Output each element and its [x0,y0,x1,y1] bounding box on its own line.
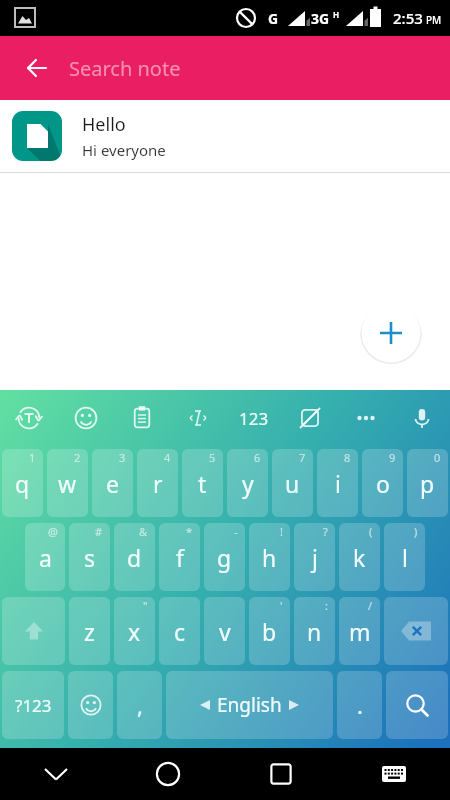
staticText: G [268,9,279,28]
button[interactable]: h [249,523,290,591]
button[interactable]: Hello [0,100,450,172]
staticText: 1 [29,450,36,465]
staticText: ?123 [15,694,52,717]
staticText: q [15,468,30,499]
staticText: - [234,524,238,539]
staticText: c [174,616,186,647]
staticText: g [217,542,232,573]
staticText: 4 [164,450,171,465]
button[interactable]: More [338,390,394,446]
staticText: y [242,468,254,499]
staticText: 123 [239,407,269,430]
button[interactable]: k [339,523,380,591]
button[interactable]: f [159,523,200,591]
button[interactable]: Clipboard [114,390,170,446]
staticText: h [262,542,277,573]
staticText: i [335,468,341,499]
button[interactable]: Voice input [394,390,450,446]
button[interactable]: n [294,597,335,665]
staticText: t [198,468,207,499]
button[interactable]: Emoji [68,671,113,739]
button[interactable]: a [25,523,65,591]
staticText: # [95,524,103,539]
button[interactable]: Text edit [170,390,226,446]
staticText: e [106,468,119,499]
button[interactable]: u [272,449,313,517]
staticText: b [262,616,277,647]
button[interactable]: ?123 [2,671,64,739]
button[interactable]: Add note [360,302,422,364]
button[interactable]: Search [386,671,448,739]
staticText: ( [369,524,373,539]
button[interactable]: y [227,449,268,517]
staticText: p [420,468,435,499]
staticText: 2 [74,450,81,465]
button[interactable]: Home [112,748,224,800]
staticText: d [127,542,142,573]
staticText: @ [48,524,58,539]
button[interactable]: v [204,597,245,665]
button[interactable]: Space, English [166,671,333,739]
staticText: * [186,524,193,539]
staticText: x [128,616,141,647]
button[interactable]: c [159,597,200,665]
staticText: 8 [344,450,351,465]
button[interactable]: p [407,449,448,517]
button[interactable]: o [362,449,403,517]
button[interactable]: t [182,449,223,517]
button[interactable]: g [204,523,245,591]
staticText: w [58,468,77,499]
button[interactable]: x [114,597,155,665]
staticText: ? [323,524,328,539]
staticText: . [357,690,363,720]
staticText: PM [426,13,442,27]
staticText: l [402,542,408,573]
staticText: & [139,524,148,539]
staticText: 9 [389,450,396,465]
staticText: ! [280,524,283,539]
button[interactable]: q [2,449,43,517]
staticText: r [153,468,163,499]
staticText: H [333,9,340,20]
staticText: Hello [82,112,126,137]
button[interactable]: Emoji [57,390,114,446]
staticText: f [176,542,184,573]
button[interactable]: Backspace [384,597,448,665]
staticText: , [137,690,143,720]
button[interactable]: Search note [69,36,450,100]
staticText: j [312,542,318,573]
staticText: Hi everyone [82,140,166,160]
staticText: n [307,616,322,647]
button[interactable]: b [249,597,290,665]
button[interactable]: Translate [0,390,57,446]
button[interactable]: w [47,449,88,517]
staticText: English [217,692,282,718]
button[interactable]: s [69,523,110,591]
button[interactable]: Hide keyboard [0,748,112,800]
button[interactable]: i [317,449,358,517]
button[interactable]: z [69,597,110,665]
staticText: : [325,598,328,613]
staticText: 3 [119,450,126,465]
button[interactable]: Back [14,45,60,91]
button[interactable]: Recent apps [224,748,337,800]
staticText: 2:53 [393,8,423,28]
staticText: 3G [311,9,330,28]
button[interactable]: j [294,523,335,591]
button[interactable]: , [117,671,162,739]
staticText: 5 [209,450,216,465]
button[interactable]: Numbers [226,390,282,446]
button[interactable]: Sticker [282,390,338,446]
button[interactable]: e [92,449,133,517]
button[interactable]: Shift [2,597,65,665]
staticText: v [219,616,231,647]
button[interactable]: d [114,523,155,591]
button[interactable]: . [337,671,382,739]
staticText: a [39,542,52,573]
button[interactable]: r [137,449,178,517]
staticText: z [84,616,95,647]
button[interactable]: l [384,523,425,591]
button[interactable]: Switch keyboard [337,748,450,800]
staticText: " [143,598,148,613]
button[interactable]: m [339,597,380,665]
